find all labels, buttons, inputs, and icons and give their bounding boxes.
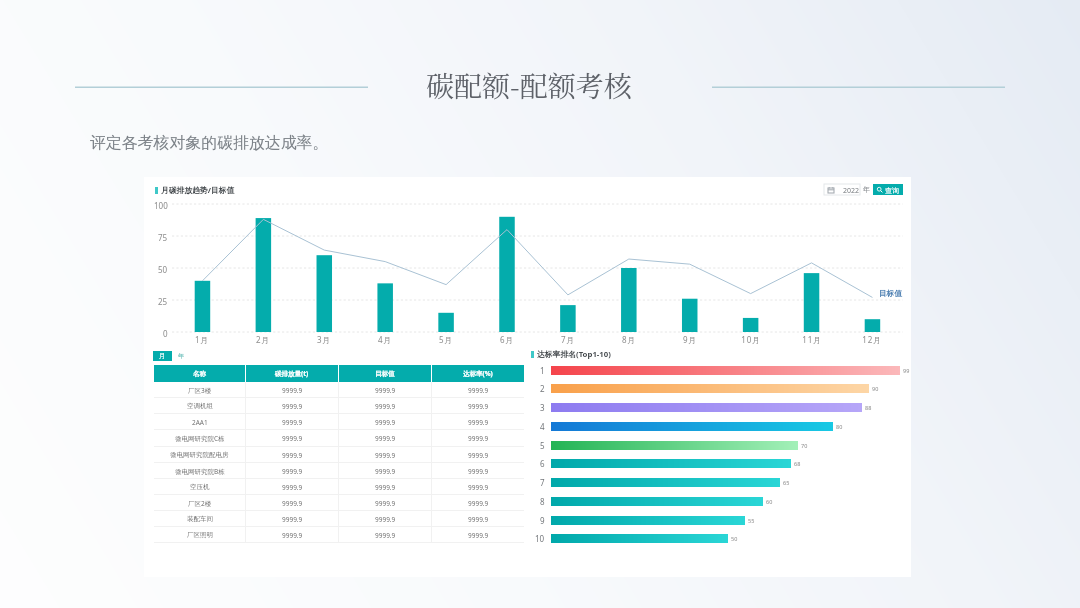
staticText: 装配车间	[187, 515, 213, 523]
staticText: 年	[863, 185, 870, 194]
staticText: 50	[731, 535, 738, 542]
button[interactable]: 微电网研究院配电房	[154, 447, 524, 463]
button[interactable]: 1	[529, 362, 911, 378]
button[interactable]: 厂区3楼	[154, 382, 524, 398]
staticText: 90	[872, 385, 879, 392]
button[interactable]: 6	[529, 455, 911, 471]
staticText: 9999.9	[282, 386, 303, 395]
staticText: 9999.9	[375, 451, 396, 460]
button[interactable]: 3	[529, 399, 911, 415]
staticText: 9999.9	[375, 434, 396, 443]
staticText: 达标率(%)	[463, 369, 493, 378]
button[interactable]: 2AA1	[154, 414, 524, 430]
staticText: 9999.9	[282, 499, 303, 508]
button[interactable]: 查询	[873, 184, 903, 195]
staticText: 9999.9	[375, 515, 396, 524]
staticText: 4	[540, 421, 545, 432]
staticText: 9999.9	[468, 402, 489, 411]
staticText: 1月	[195, 334, 209, 345]
button[interactable]: 10	[529, 530, 911, 546]
staticText: 55	[748, 517, 755, 524]
button[interactable]: 装配车间	[154, 511, 524, 527]
staticText: 年	[178, 352, 184, 360]
staticText: 微电网研究院配电房	[170, 451, 229, 459]
staticText: 3月	[317, 334, 331, 345]
staticText: 4月	[378, 334, 392, 345]
staticText: 空调机组	[187, 402, 213, 410]
staticText: 25	[158, 296, 168, 307]
staticText: 9999.9	[375, 483, 396, 492]
staticText: 达标率排名(Top1-10)	[537, 349, 611, 360]
staticText: 9999.9	[282, 483, 303, 492]
button[interactable]: 9	[529, 512, 911, 528]
staticText: 9999.9	[282, 451, 303, 460]
staticText: 7月	[561, 334, 575, 345]
button[interactable]: 2	[529, 380, 911, 396]
staticText: 11月	[802, 334, 822, 345]
staticText: 厂区照明	[187, 531, 213, 539]
staticText: 9999.9	[375, 531, 396, 540]
staticText: 2月	[256, 334, 270, 345]
button[interactable]: 4	[529, 418, 911, 434]
staticText: 月碳排放趋势/目标值	[161, 185, 235, 196]
staticText: 目标值	[879, 289, 902, 299]
button[interactable]: 空调机组	[154, 398, 524, 414]
staticText: 厂区3楼	[188, 386, 212, 395]
staticText: 9999.9	[468, 499, 489, 508]
button[interactable]: 月	[153, 351, 172, 361]
button[interactable]: 微电网研究院B栋	[154, 463, 524, 479]
staticText: 8月	[622, 334, 636, 345]
staticText: 10	[535, 533, 545, 544]
staticText: 88	[865, 404, 872, 411]
staticText: 9999.9	[282, 434, 303, 443]
staticText: 0	[163, 328, 168, 339]
staticText: 空压机	[190, 483, 210, 491]
button[interactable]: 7	[529, 474, 911, 490]
staticText: 9999.9	[468, 531, 489, 540]
button[interactable]: 厂区照明	[154, 527, 524, 543]
staticText: 9999.9	[375, 402, 396, 411]
staticText: 3	[540, 402, 545, 413]
staticText: 6月	[500, 334, 514, 345]
staticText: 微电网研究院B栋	[175, 467, 225, 476]
staticText: 68	[794, 460, 801, 467]
staticText: 9999.9	[468, 386, 489, 395]
staticText: 99	[903, 367, 910, 374]
staticText: 10月	[741, 334, 761, 345]
staticText: 8	[540, 496, 545, 507]
staticText: 9999.9	[282, 467, 303, 476]
staticText: 50	[158, 264, 168, 275]
staticText: 9999.9	[375, 499, 396, 508]
button[interactable]: 8	[529, 493, 911, 509]
staticText: 9999.9	[468, 418, 489, 427]
staticText: 2AA1	[192, 418, 208, 427]
staticText: 评定各考核对象的碳排放达成率。	[90, 133, 329, 153]
staticText: 9	[540, 515, 545, 526]
staticText: 9999.9	[375, 467, 396, 476]
staticText: 70	[801, 442, 808, 449]
button[interactable]: 选择年份	[824, 184, 860, 195]
staticText: 微电网研究院C栋	[175, 434, 225, 443]
staticText: 2	[540, 383, 545, 394]
staticText: 9999.9	[375, 418, 396, 427]
button[interactable]: 空压机	[154, 479, 524, 495]
staticText: 1	[540, 365, 545, 376]
staticText: 7	[540, 477, 545, 488]
staticText: 75	[158, 232, 168, 243]
staticText: 6	[540, 458, 545, 469]
staticText: 9999.9	[282, 515, 303, 524]
button[interactable]: 5	[529, 437, 911, 453]
button[interactable]: 年	[172, 351, 189, 361]
staticText: 80	[836, 423, 843, 430]
staticText: 9999.9	[468, 434, 489, 443]
staticText: 月	[159, 352, 166, 360]
button[interactable]: 微电网研究院C栋	[154, 430, 524, 446]
staticText: 9999.9	[282, 418, 303, 427]
staticText: 9999.9	[468, 483, 489, 492]
button[interactable]: 厂区2楼	[154, 495, 524, 511]
staticText: 2022	[843, 186, 860, 196]
staticText: 5	[540, 440, 545, 451]
staticText: 厂区2楼	[188, 499, 212, 508]
staticText: 9999.9	[468, 515, 489, 524]
staticText: 60	[766, 498, 773, 505]
